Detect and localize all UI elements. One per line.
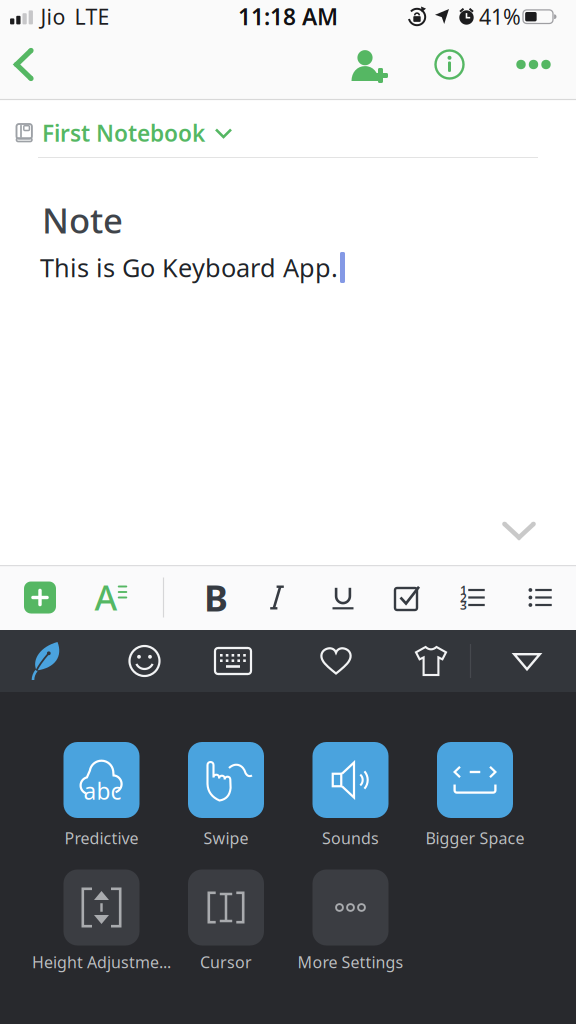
button[interactable] bbox=[120, 636, 168, 686]
button[interactable] bbox=[522, 577, 558, 617]
staticText: More Settings bbox=[297, 951, 403, 973]
button[interactable] bbox=[505, 639, 549, 683]
button[interactable]: First Notebook bbox=[16, 115, 233, 151]
staticText: B bbox=[204, 574, 228, 621]
button[interactable] bbox=[407, 636, 455, 686]
button[interactable] bbox=[511, 42, 555, 86]
button[interactable] bbox=[437, 742, 513, 818]
staticText: 11:18 AM bbox=[238, 1, 338, 31]
button[interactable]: abc bbox=[63, 742, 139, 818]
staticText: 1 bbox=[460, 582, 467, 598]
button[interactable] bbox=[312, 636, 360, 686]
staticText: 3 bbox=[460, 597, 467, 613]
button[interactable]: B bbox=[198, 577, 234, 617]
button[interactable] bbox=[325, 578, 361, 618]
button[interactable] bbox=[24, 581, 56, 613]
staticText: Note bbox=[42, 197, 123, 243]
button[interactable] bbox=[427, 42, 471, 86]
staticText: 41% bbox=[479, 2, 521, 31]
button[interactable] bbox=[347, 43, 391, 87]
staticText: abc bbox=[83, 776, 121, 806]
button[interactable] bbox=[495, 513, 543, 549]
staticText: First Notebook bbox=[42, 118, 205, 148]
staticText: Predictive bbox=[64, 827, 138, 849]
button[interactable] bbox=[259, 577, 295, 617]
button[interactable] bbox=[312, 742, 388, 818]
button[interactable] bbox=[63, 869, 139, 945]
button[interactable]: 1 bbox=[455, 577, 491, 617]
button[interactable] bbox=[188, 869, 264, 945]
button[interactable] bbox=[2, 39, 46, 89]
button[interactable] bbox=[389, 578, 425, 618]
button[interactable] bbox=[23, 636, 71, 686]
staticText: Height Adjustme... bbox=[32, 951, 171, 973]
button[interactable]: A bbox=[96, 582, 130, 612]
staticText: Bigger Space bbox=[425, 827, 524, 849]
button[interactable] bbox=[312, 869, 388, 945]
staticText: Sounds bbox=[322, 827, 379, 849]
staticText: Swipe bbox=[203, 827, 248, 849]
staticText: This is Go Keyboard App. bbox=[40, 251, 338, 284]
button[interactable] bbox=[188, 742, 264, 818]
button[interactable] bbox=[209, 636, 257, 686]
staticText: LTE bbox=[74, 2, 109, 31]
staticText: A bbox=[94, 574, 117, 620]
staticText: Jio bbox=[40, 2, 65, 31]
staticText: Cursor bbox=[200, 951, 252, 973]
staticText: 2 bbox=[460, 589, 467, 605]
